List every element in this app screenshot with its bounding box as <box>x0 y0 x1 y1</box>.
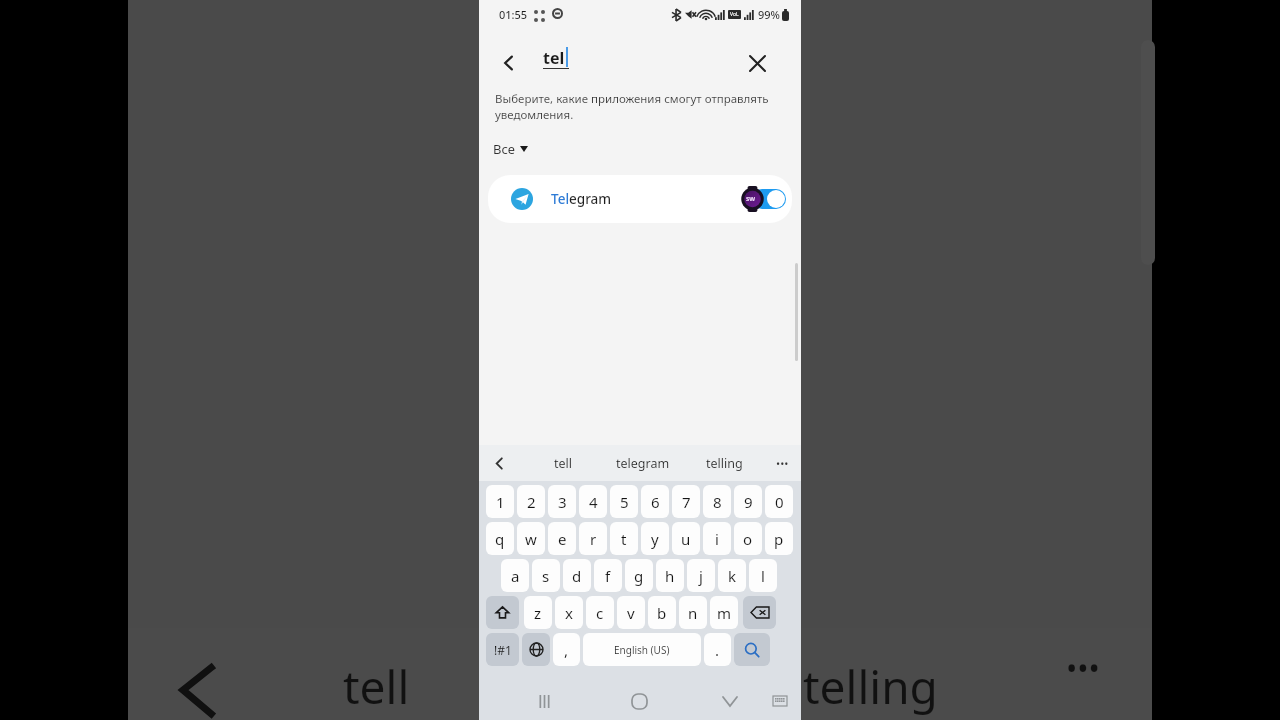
staticText: 1 <box>496 492 505 512</box>
button[interactable]: telling <box>685 445 763 481</box>
button[interactable]: Switch keyboard <box>767 688 793 714</box>
button[interactable]: Все <box>493 137 528 161</box>
staticText: i <box>715 529 719 549</box>
staticText: 99% <box>758 7 780 22</box>
button[interactable]: r <box>579 522 607 555</box>
staticText: q <box>495 529 505 549</box>
staticText: n <box>688 603 698 623</box>
button[interactable]: c <box>586 596 614 629</box>
staticText: z <box>534 603 542 623</box>
button[interactable]: 7 <box>672 485 700 518</box>
button[interactable]: w <box>517 522 545 555</box>
button[interactable]: 1 <box>486 485 514 518</box>
button[interactable]: Backspace <box>743 596 776 629</box>
button[interactable]: 3 <box>548 485 576 518</box>
button[interactable]: z <box>524 596 552 629</box>
staticText: , <box>564 640 569 660</box>
staticText: 6 <box>651 492 660 512</box>
button[interactable]: a <box>501 559 529 592</box>
staticText: h <box>665 566 675 586</box>
button[interactable]: n <box>679 596 707 629</box>
staticText: o <box>743 529 753 549</box>
button[interactable]: Previous suggestions <box>484 448 514 478</box>
button[interactable]: Change keyboard language <box>522 633 550 666</box>
button[interactable]: Telegram <box>488 175 792 223</box>
button[interactable]: tel <box>541 46 741 76</box>
button[interactable]: telegram <box>601 445 685 481</box>
staticText: c <box>596 603 604 623</box>
button[interactable]: v <box>617 596 645 629</box>
button[interactable]: Clear search <box>737 43 777 83</box>
staticText: f <box>605 566 611 586</box>
button[interactable]: Toggle notifications for Telegram <box>740 186 786 212</box>
button[interactable]: m <box>710 596 738 629</box>
button[interactable]: d <box>563 559 591 592</box>
button[interactable]: k <box>718 559 746 592</box>
staticText: tell <box>343 655 410 718</box>
staticText: p <box>774 529 784 549</box>
button[interactable]: h <box>656 559 684 592</box>
staticText: !#1 <box>494 642 512 658</box>
staticText: ••• <box>1066 648 1100 689</box>
staticText: SW <box>746 195 756 203</box>
staticText: a <box>511 566 520 586</box>
button[interactable]: u <box>672 522 700 555</box>
button[interactable]: 0 <box>765 485 793 518</box>
button[interactable]: l <box>749 559 777 592</box>
button[interactable]: Home <box>626 688 652 714</box>
button[interactable]: 5 <box>610 485 638 518</box>
button[interactable]: More suggestions <box>767 448 797 478</box>
staticText: English (US) <box>614 643 670 657</box>
staticText: d <box>572 566 582 586</box>
button[interactable]: s <box>532 559 560 592</box>
button[interactable]: i <box>703 522 731 555</box>
staticText: t <box>621 529 627 549</box>
button[interactable]: Back <box>489 43 529 83</box>
button[interactable]: !#1 <box>486 633 519 666</box>
staticText: r <box>590 529 597 549</box>
staticText: 0 <box>775 492 784 512</box>
staticText: g <box>634 566 644 586</box>
staticText: 5 <box>620 492 629 512</box>
button[interactable]: . <box>704 633 731 666</box>
button[interactable]: Hide keyboard <box>717 688 743 714</box>
button[interactable]: English (US) <box>583 633 701 666</box>
button[interactable]: f <box>594 559 622 592</box>
staticText: 8 <box>713 492 722 512</box>
staticText: k <box>728 566 737 586</box>
button[interactable]: j <box>687 559 715 592</box>
button[interactable]: 6 <box>641 485 669 518</box>
button[interactable]: 8 <box>703 485 731 518</box>
staticText: 4 <box>589 492 598 512</box>
staticText: b <box>657 603 667 623</box>
staticText: telegram <box>616 455 670 472</box>
staticText: tell <box>554 455 573 472</box>
button[interactable]: 9 <box>734 485 762 518</box>
staticText: telling <box>803 655 938 718</box>
button[interactable]: e <box>548 522 576 555</box>
button[interactable]: p <box>765 522 793 555</box>
button[interactable]: tell <box>526 445 601 481</box>
button[interactable]: q <box>486 522 514 555</box>
button[interactable]: 2 <box>517 485 545 518</box>
staticText: l <box>761 566 765 586</box>
button[interactable]: x <box>555 596 583 629</box>
button[interactable]: t <box>610 522 638 555</box>
staticText: s <box>542 566 550 586</box>
button[interactable]: , <box>553 633 580 666</box>
button[interactable]: o <box>734 522 762 555</box>
staticText: v <box>627 603 635 623</box>
staticText: 7 <box>682 492 691 512</box>
button[interactable]: g <box>625 559 653 592</box>
button[interactable]: Search <box>734 633 770 666</box>
staticText: 3 <box>558 492 567 512</box>
button[interactable]: Recent apps <box>531 688 557 714</box>
staticText: m <box>717 603 732 623</box>
button[interactable]: Shift <box>486 596 519 629</box>
staticText: 2 <box>527 492 536 512</box>
button[interactable]: b <box>648 596 676 629</box>
button[interactable]: 4 <box>579 485 607 518</box>
staticText: j <box>699 566 703 586</box>
staticText: . <box>715 640 720 660</box>
button[interactable]: y <box>641 522 669 555</box>
